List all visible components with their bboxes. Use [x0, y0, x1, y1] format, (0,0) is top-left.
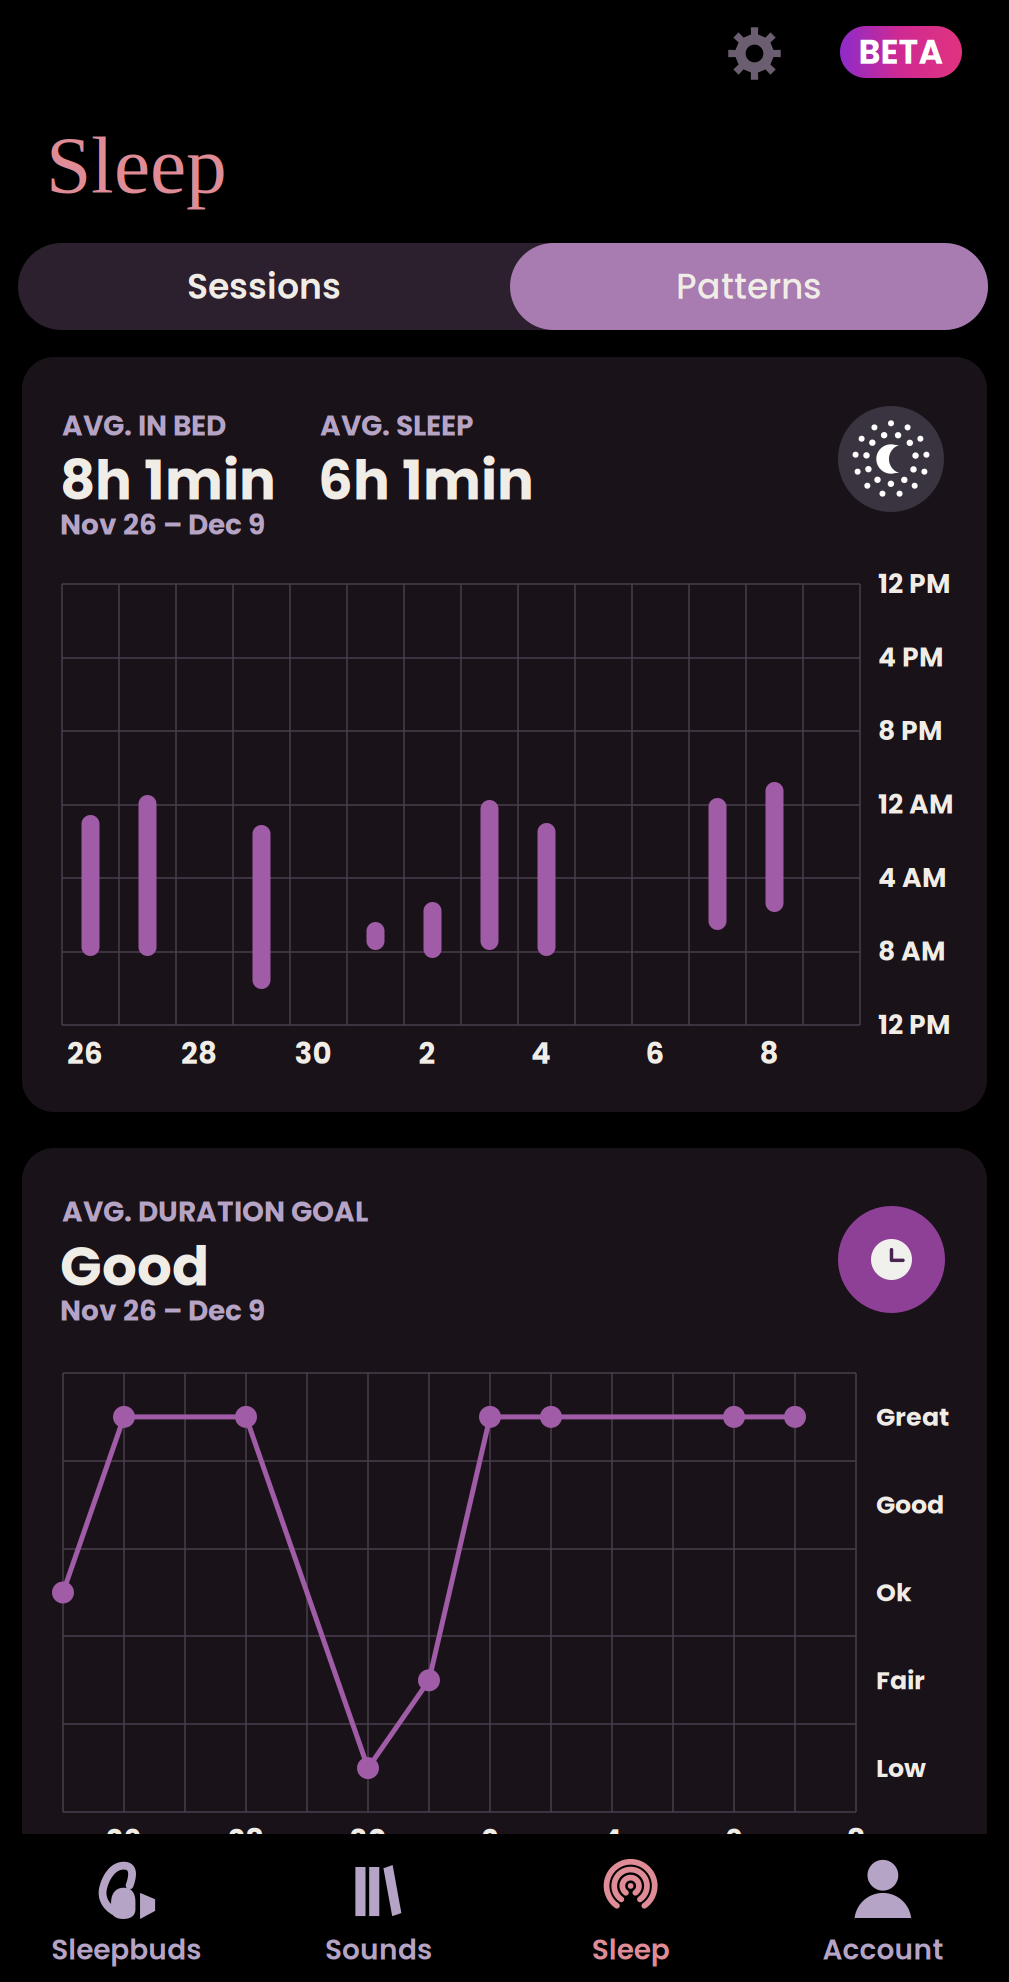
staticText: 26 [67, 1033, 103, 1074]
staticText: Good [876, 1487, 944, 1522]
button[interactable]: Sessions [18, 243, 510, 330]
staticText: 30 [294, 1033, 331, 1074]
staticText: 8 PM [878, 712, 942, 749]
staticText: Ok [876, 1575, 912, 1610]
staticText: Account [822, 1930, 943, 1969]
staticText: 12 AM [878, 786, 953, 823]
staticText: 4 PM [878, 639, 943, 676]
staticText: 2 [481, 1820, 498, 1861]
staticText: 4 [602, 1820, 622, 1861]
button[interactable]: Account [757, 1861, 1009, 1969]
staticText: Great [876, 1399, 949, 1435]
staticText: Sleep [592, 1930, 670, 1969]
staticText: 6h 1min [318, 442, 534, 518]
staticText: Sleepbuds [51, 1930, 201, 1969]
staticText: Sleep [46, 120, 227, 210]
staticText: AVG. SLEEP [320, 406, 473, 445]
staticText: Good [60, 1228, 209, 1304]
staticText: 8 [846, 1820, 865, 1861]
staticText: AVG. DURATION GOAL [62, 1192, 368, 1231]
staticText: 8 [759, 1033, 778, 1074]
staticText: 12 PM [878, 1006, 950, 1043]
staticText: 6 [724, 1820, 743, 1861]
staticText: 4 AM [878, 859, 946, 896]
button[interactable]: Sleep [504, 1861, 757, 1969]
staticText: 30 [349, 1820, 386, 1861]
staticText: 8 AM [878, 933, 945, 970]
staticText: 6 [645, 1033, 664, 1074]
staticText: Patterns [676, 262, 822, 311]
button[interactable]: Settings [728, 27, 781, 80]
staticText: 2 [418, 1033, 435, 1074]
staticText: Fair [876, 1663, 925, 1698]
staticText: 8h 1min [60, 442, 276, 518]
staticText: 12 PM [878, 565, 950, 602]
staticText: 4 [531, 1033, 551, 1074]
staticText: 28 [181, 1033, 217, 1074]
staticText: Nov 26 – Dec 9 [60, 505, 265, 544]
button[interactable]: Sounds [252, 1861, 504, 1969]
staticText: 26 [106, 1820, 142, 1861]
button[interactable]: Sleepbuds [0, 1861, 252, 1969]
staticText: Nov 26 – Dec 9 [60, 1291, 265, 1330]
staticText: Sounds [325, 1930, 432, 1969]
staticText: 28 [228, 1820, 264, 1861]
staticText: Sessions [187, 262, 341, 311]
button[interactable]: Patterns [510, 243, 988, 330]
staticText: AVG. IN BED [62, 406, 226, 445]
button[interactable]: BETA [840, 26, 962, 78]
staticText: Low [876, 1750, 926, 1786]
staticText: BETA [858, 29, 943, 75]
